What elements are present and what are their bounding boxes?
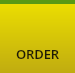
button[interactable]: ORDER bbox=[0, 44, 75, 64]
staticText: ORDER bbox=[16, 45, 59, 63]
